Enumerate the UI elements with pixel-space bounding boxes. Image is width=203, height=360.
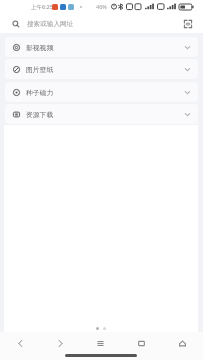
button[interactable]: 种子磁力 <box>5 82 198 102</box>
staticText: 图片壁纸 <box>26 65 54 74</box>
button[interactable]: Back <box>0 332 40 354</box>
button[interactable]: Menu <box>80 332 121 354</box>
button[interactable]: 搜索或输入网址 <box>27 20 74 28</box>
staticText: 影视视频 <box>26 43 54 52</box>
button[interactable]: 资源下载 <box>5 104 198 124</box>
button[interactable]: 图片壁纸 <box>5 59 198 79</box>
button[interactable]: Tabs <box>121 332 162 354</box>
staticText: 资源下载 <box>26 110 54 119</box>
button[interactable]: Search <box>12 20 20 28</box>
button[interactable]: 影视视频 <box>5 37 198 57</box>
staticText: 46% <box>96 3 107 10</box>
staticText: 种子磁力 <box>26 88 54 97</box>
button[interactable]: Forward <box>40 332 80 354</box>
staticText: 上午6:25 <box>31 3 53 11</box>
button[interactable]: Scan <box>183 19 193 29</box>
staticText: 搜索或输入网址 <box>27 20 74 28</box>
button[interactable]: Home <box>162 332 203 354</box>
